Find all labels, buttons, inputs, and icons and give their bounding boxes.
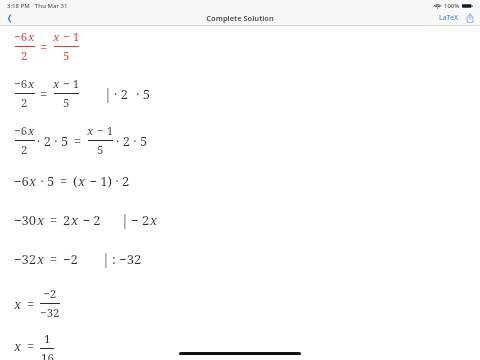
staticText: · 5 — [136, 85, 150, 103]
staticText: 2 — [21, 142, 28, 158]
staticText: = — [60, 172, 68, 190]
staticText: x — [37, 211, 45, 229]
staticText: x — [78, 172, 86, 190]
staticText: LaTeX — [439, 13, 459, 23]
staticText: | — [102, 249, 110, 268]
staticText: −6 — [14, 123, 28, 139]
staticText: x — [87, 123, 94, 139]
staticText: | — [104, 84, 112, 103]
staticText: Complete Solution — [206, 13, 274, 23]
staticText: 2 — [21, 48, 28, 64]
staticText: x — [37, 250, 45, 268]
staticText: 3:18 PM — [7, 2, 30, 10]
button[interactable]: Share — [463, 11, 477, 25]
staticText: 5 — [63, 95, 70, 111]
staticText: − 1) · 2 — [86, 172, 130, 190]
staticText: 5 — [97, 142, 104, 158]
staticText: · 2 · 5 — [116, 132, 148, 150]
staticText: − 2 — [79, 211, 101, 229]
staticText: = — [74, 132, 82, 150]
staticText: : −32 — [112, 250, 142, 268]
staticText: = — [40, 85, 48, 103]
staticText: x — [29, 172, 37, 190]
staticText: x — [14, 295, 22, 313]
staticText: −6 — [14, 172, 29, 190]
staticText: − 1 — [60, 76, 80, 92]
staticText: | — [121, 210, 129, 229]
staticText: − 1 — [94, 123, 114, 139]
staticText: = — [27, 337, 35, 355]
staticText: = — [40, 38, 48, 56]
staticText: 2 — [63, 211, 71, 229]
staticText: x — [71, 211, 79, 229]
staticText: x — [28, 123, 35, 139]
staticText: x — [150, 211, 158, 229]
staticText: x — [28, 29, 35, 45]
staticText: − 2 — [131, 211, 150, 229]
staticText: · 2 · 5 — [37, 132, 69, 150]
staticText: ( — [73, 172, 78, 190]
staticText: · 5 — [37, 172, 55, 190]
staticText: = — [50, 250, 58, 268]
staticText: −2 — [43, 286, 57, 302]
staticText: 2 — [21, 95, 28, 111]
staticText: x — [14, 337, 22, 355]
staticText: −30 — [14, 211, 37, 229]
button[interactable]: LaTeX — [436, 11, 462, 25]
staticText: x — [53, 76, 60, 92]
staticText: −6 — [14, 29, 28, 45]
staticText: −32 — [14, 250, 37, 268]
staticText: 16 — [41, 350, 54, 360]
staticText: x — [28, 76, 35, 92]
staticText: x — [53, 29, 60, 45]
staticText: −6 — [14, 76, 28, 92]
staticText: 1 — [44, 331, 51, 347]
staticText: 5 — [63, 48, 70, 64]
button[interactable]: Back — [0, 11, 18, 25]
staticText: Thu Mar 31 — [35, 2, 68, 10]
staticText: −2 — [63, 250, 78, 268]
staticText: −32 — [40, 305, 60, 321]
staticText: = — [27, 295, 35, 313]
staticText: · 2 — [114, 85, 128, 103]
staticText: = — [50, 211, 58, 229]
staticText: − 1 — [60, 29, 80, 45]
staticText: 100% — [444, 2, 460, 10]
